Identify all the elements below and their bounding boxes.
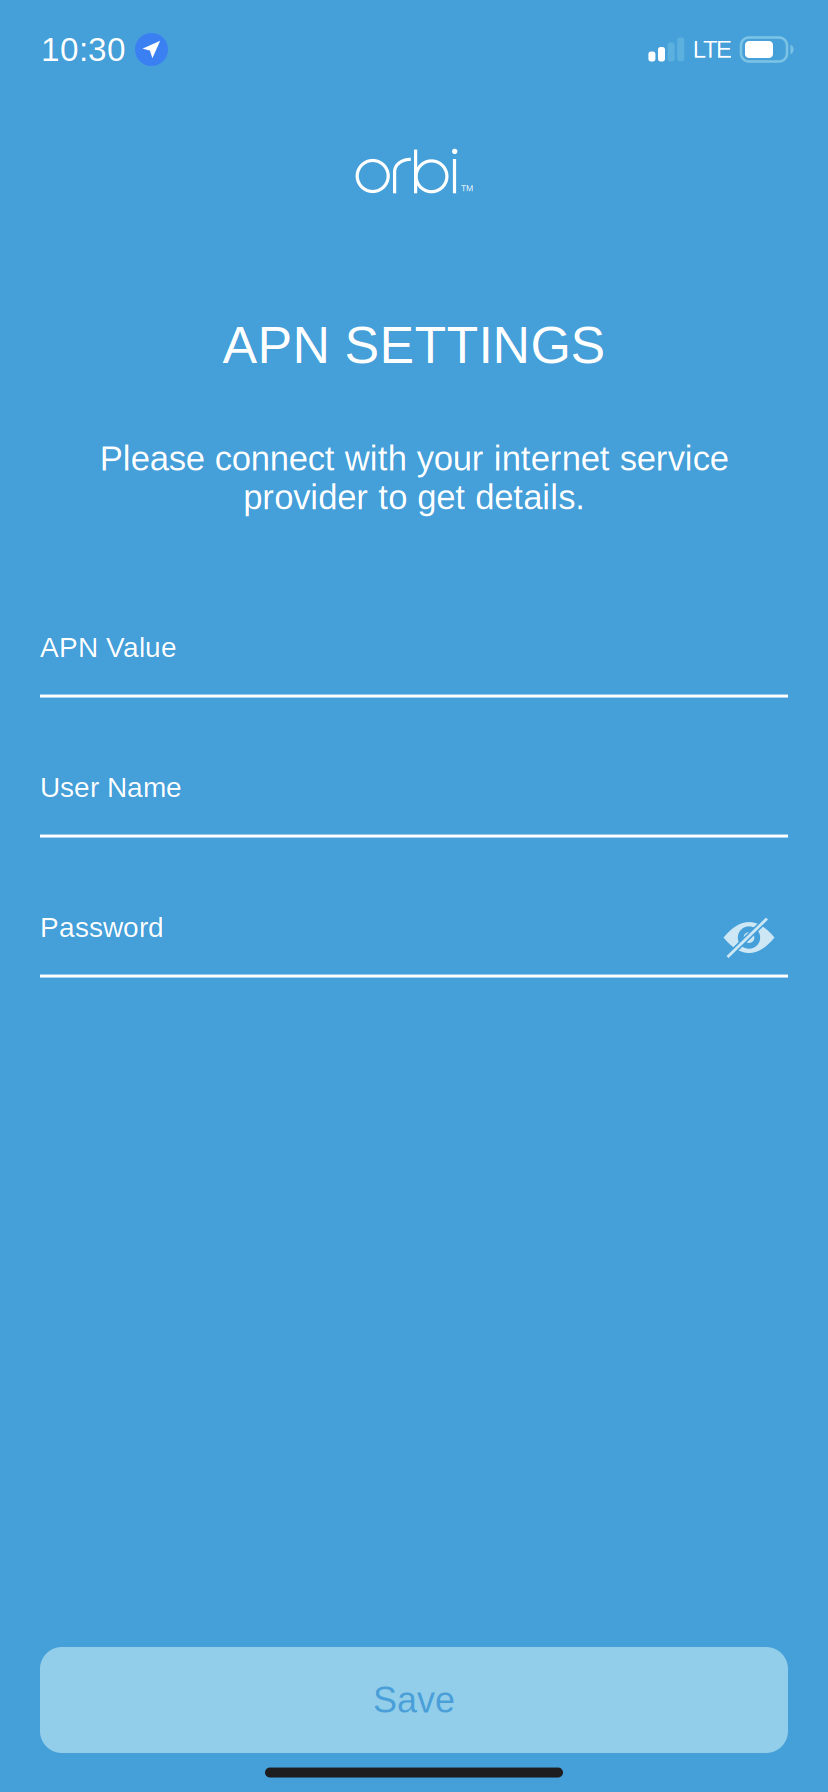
- button[interactable]: Show password: [718, 912, 780, 964]
- staticText: APN SETTINGS: [222, 316, 605, 374]
- staticText: LTE: [693, 36, 732, 63]
- staticText: Save: [373, 1680, 455, 1720]
- staticText: 10:30: [41, 31, 126, 68]
- staticText: Please connect with your internet servic…: [99, 439, 728, 517]
- button[interactable]: Save: [40, 1647, 788, 1753]
- staticText: Password: [40, 912, 164, 943]
- staticText: TM: [461, 183, 473, 193]
- button[interactable]: User Name: [40, 769, 788, 838]
- staticText: User Name: [40, 772, 182, 803]
- button[interactable]: Password: [40, 909, 788, 978]
- button[interactable]: APN Value: [40, 629, 788, 698]
- staticText: APN Value: [40, 632, 177, 663]
